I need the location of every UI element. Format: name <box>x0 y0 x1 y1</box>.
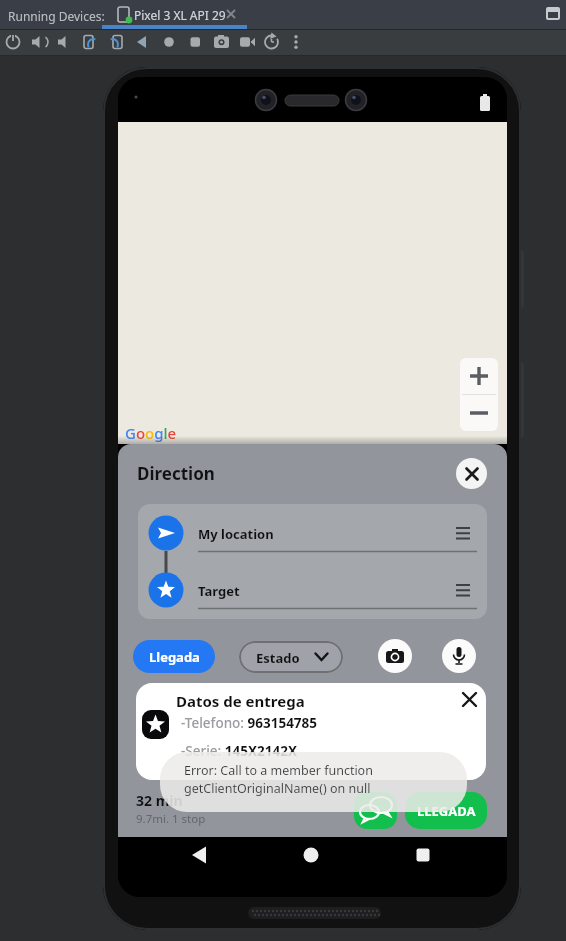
button[interactable] <box>354 792 397 829</box>
button[interactable]: Pixel 3 XL API 29 <box>102 0 247 29</box>
staticText: My location <box>198 525 274 543</box>
staticText: -Serie: 145X2142X <box>181 742 297 760</box>
staticText: Datos de entrega <box>176 691 305 711</box>
button[interactable] <box>460 395 498 431</box>
button[interactable] <box>456 458 487 489</box>
button[interactable] <box>403 835 443 875</box>
button[interactable]: Llegada <box>133 640 215 673</box>
button[interactable] <box>378 639 412 673</box>
staticText: Target <box>198 582 240 600</box>
staticText: 9.7mi. 1 stop <box>136 811 206 827</box>
button[interactable] <box>179 835 219 875</box>
staticText: Running Devices: <box>8 8 105 24</box>
staticText: Llegada <box>149 648 200 666</box>
button[interactable]: LLEGADA <box>405 792 487 829</box>
button[interactable]: Estado <box>239 641 343 673</box>
button[interactable] <box>442 639 476 673</box>
button[interactable] <box>291 835 331 875</box>
staticText: LLEGADA <box>417 802 476 820</box>
staticText: Estado <box>256 649 300 667</box>
staticText: Direction <box>137 462 215 485</box>
staticText: -Telefono: 963154785 <box>181 714 318 732</box>
staticText: Google <box>125 423 177 443</box>
staticText: Error: Call to a member function getClie… <box>184 762 373 797</box>
button[interactable] <box>460 358 498 394</box>
staticText: 32 min <box>136 791 183 810</box>
staticText: Pixel 3 XL API 29 <box>134 7 226 23</box>
